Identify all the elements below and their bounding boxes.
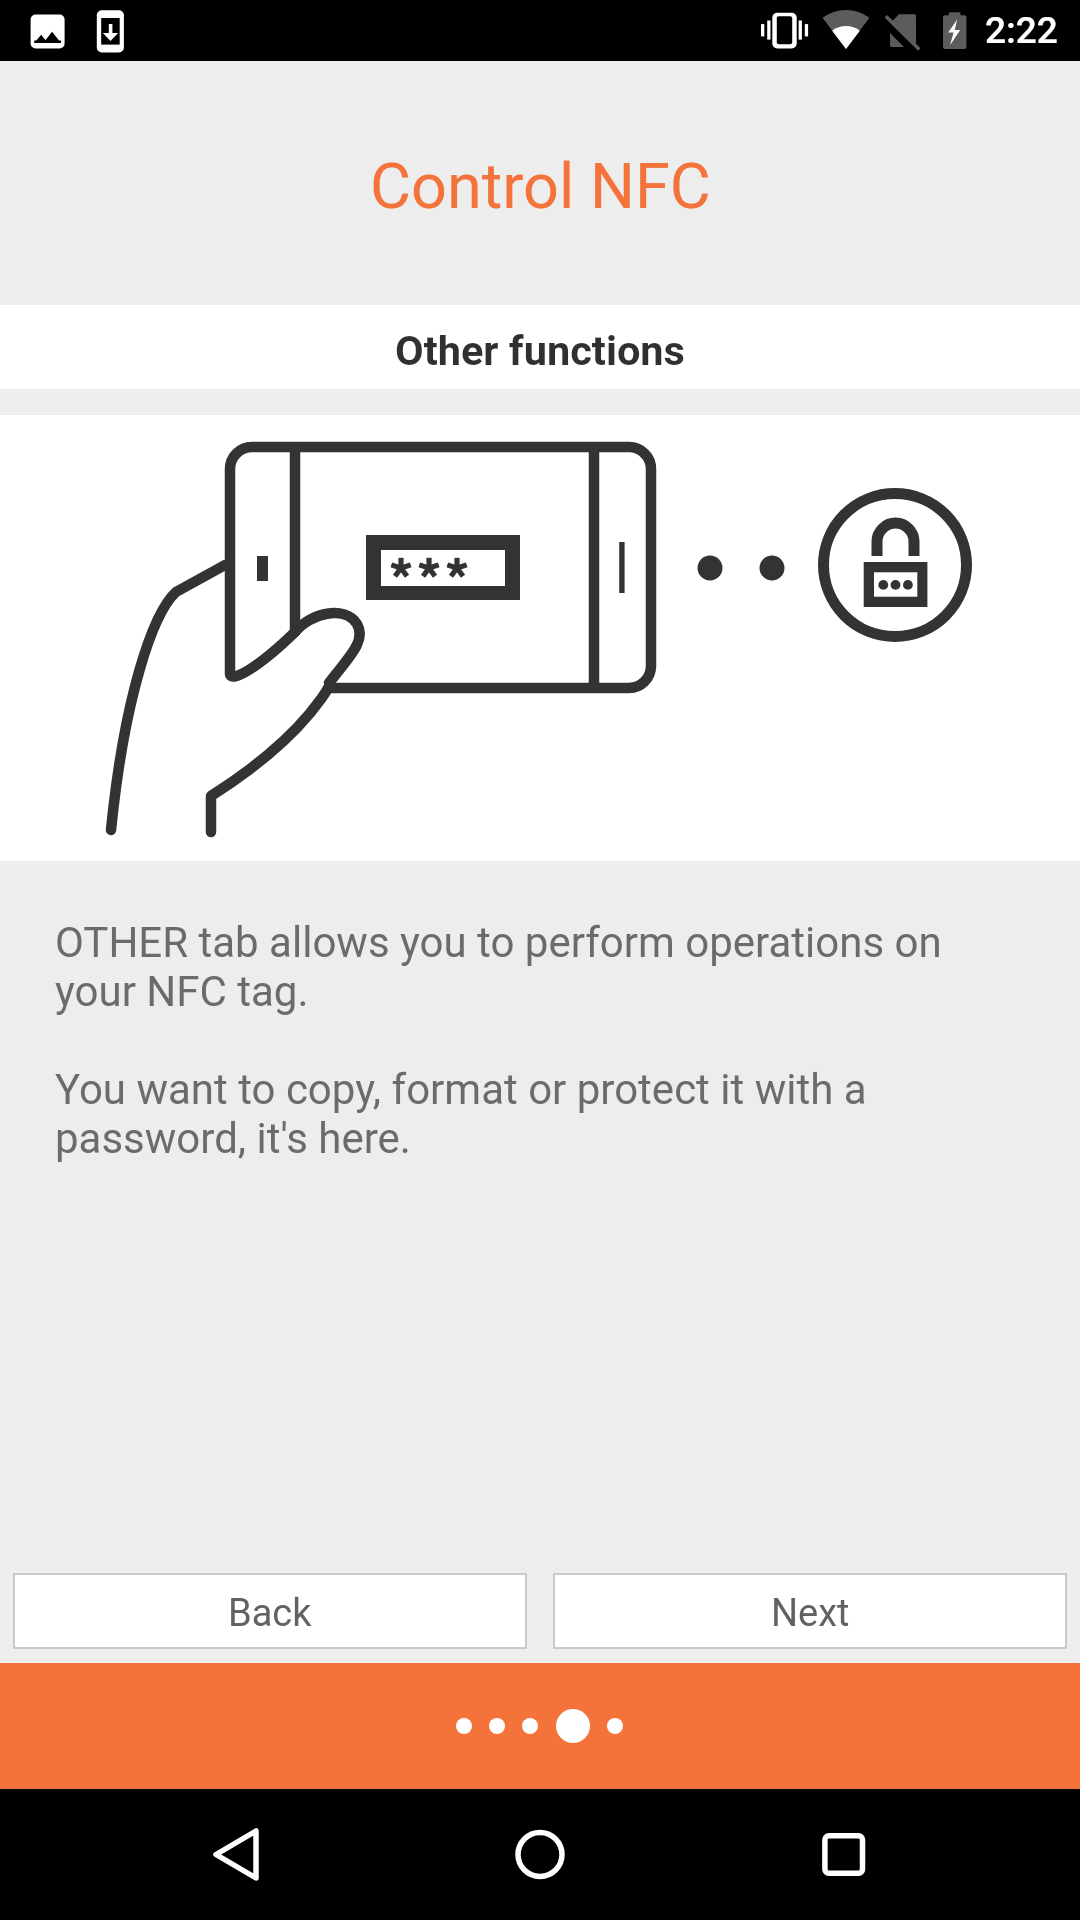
staticText: 2:22 xyxy=(985,9,1058,52)
staticText: Control NFC xyxy=(370,150,711,224)
staticText: OTHER tab allows you to perform operatio… xyxy=(55,918,942,1163)
staticText: Other functions xyxy=(395,326,685,375)
button[interactable]: Page 4 xyxy=(549,1702,597,1750)
staticText: Next xyxy=(771,1591,850,1636)
button[interactable]: Home xyxy=(480,1789,600,1920)
button[interactable]: Back xyxy=(176,1789,296,1920)
button[interactable]: Page 2 xyxy=(482,1711,512,1741)
button[interactable]: Next xyxy=(553,1573,1067,1649)
button[interactable]: Recent apps xyxy=(784,1789,904,1920)
button[interactable]: Page 1 xyxy=(449,1711,479,1741)
button[interactable]: Page 3 xyxy=(515,1711,545,1741)
button[interactable]: Page 5 xyxy=(600,1711,630,1741)
staticText: Back xyxy=(228,1591,312,1636)
button[interactable]: Back xyxy=(13,1573,527,1649)
